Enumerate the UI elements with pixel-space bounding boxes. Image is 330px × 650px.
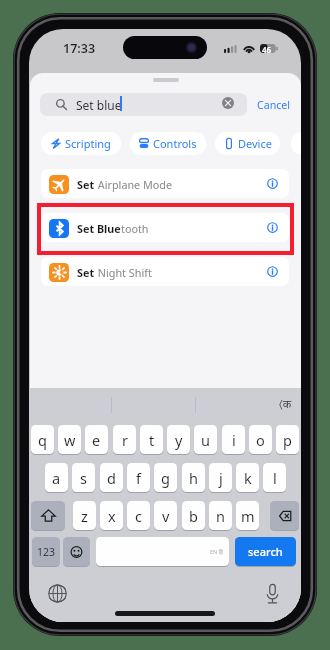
button[interactable]: search — [235, 537, 296, 566]
button[interactable]: e — [85, 425, 108, 454]
staticText: s — [80, 468, 87, 488]
button[interactable]: Cancel — [251, 93, 296, 116]
staticText: Set — [77, 265, 95, 280]
button[interactable]: Clear text — [222, 97, 234, 109]
button[interactable]: Dictate — [261, 582, 284, 605]
button[interactable]: c — [127, 501, 150, 530]
staticText: Set Blue — [77, 221, 121, 236]
staticText: k — [244, 468, 252, 488]
button[interactable]: h — [182, 463, 205, 492]
button[interactable]: f — [127, 463, 150, 492]
button[interactable] — [40, 93, 247, 116]
staticText: search — [248, 544, 283, 559]
button[interactable]: y — [167, 425, 190, 454]
staticText: EN हि — [210, 548, 224, 555]
staticText: m — [241, 506, 255, 526]
button[interactable]: n — [209, 501, 232, 530]
button[interactable]: b — [182, 501, 205, 530]
button[interactable]: r — [113, 425, 136, 454]
staticText: c — [135, 506, 142, 526]
staticText: x — [108, 506, 116, 526]
button[interactable]: p — [276, 425, 299, 454]
staticText: n — [216, 506, 225, 526]
staticText: Scripting — [65, 136, 111, 151]
button[interactable]: l — [263, 463, 286, 492]
button[interactable]: Shift — [31, 501, 65, 530]
button[interactable]: w — [58, 425, 81, 454]
staticText: 17:33 — [63, 40, 96, 57]
button[interactable]: Backspace — [270, 501, 299, 530]
staticText: z — [81, 506, 88, 526]
button[interactable]: Info — [267, 222, 278, 233]
button[interactable]: q — [31, 425, 54, 454]
staticText: Night Shift — [95, 265, 152, 280]
button[interactable]: i — [222, 425, 245, 454]
button[interactable]: x — [100, 501, 123, 530]
staticText: u — [201, 430, 210, 450]
staticText: Device — [238, 136, 272, 151]
button[interactable]: t — [140, 425, 163, 454]
staticText: i — [232, 430, 236, 450]
staticText: Airplane Mode — [95, 177, 173, 192]
staticText: tooth — [121, 221, 149, 236]
button[interactable]: Info — [267, 266, 278, 277]
staticText: g — [161, 468, 170, 488]
staticText: w — [64, 430, 76, 450]
button[interactable]: j — [209, 463, 232, 492]
staticText: Cancel — [257, 98, 290, 112]
staticText: h — [189, 468, 198, 488]
staticText: y — [175, 430, 183, 450]
button[interactable]: Switch keyboard language — [46, 582, 69, 605]
button[interactable]: v — [154, 501, 177, 530]
button[interactable] — [41, 169, 289, 198]
staticText: Set — [77, 177, 95, 192]
button[interactable] — [41, 213, 289, 242]
staticText: Controls — [153, 136, 197, 151]
button[interactable]: Share — [291, 132, 301, 155]
button[interactable]: Device — [215, 132, 280, 155]
staticText: o — [256, 430, 265, 450]
button[interactable]: EN हि — [96, 537, 229, 566]
button[interactable]: Controls — [130, 132, 206, 155]
staticText: Set blue — [76, 97, 122, 113]
staticText: e — [92, 430, 101, 450]
button[interactable]: a — [45, 463, 68, 492]
staticText: p — [283, 430, 292, 450]
staticText: j — [219, 468, 223, 488]
button[interactable]: g — [154, 463, 177, 492]
button[interactable]: k — [236, 463, 259, 492]
staticText: v — [162, 506, 170, 526]
staticText: t — [149, 430, 155, 450]
staticText: 〈क — [279, 396, 292, 411]
staticText: 123 — [37, 545, 56, 559]
staticText: b — [189, 506, 198, 526]
button[interactable]: Emoji keyboard — [63, 537, 90, 566]
staticText: q — [38, 430, 47, 450]
button[interactable]: d — [100, 463, 123, 492]
button[interactable]: s — [72, 463, 95, 492]
staticText: r — [122, 430, 128, 450]
staticText: 46 — [262, 44, 272, 55]
staticText: a — [52, 468, 61, 488]
button[interactable] — [41, 257, 289, 286]
button[interactable]: m — [236, 501, 259, 530]
button[interactable]: o — [249, 425, 272, 454]
button[interactable]: u — [194, 425, 217, 454]
staticText: f — [136, 468, 141, 488]
button[interactable]: Scripting — [41, 132, 121, 155]
button[interactable]: Info — [267, 178, 278, 189]
button[interactable]: 123 — [32, 537, 60, 566]
staticText: l — [273, 468, 277, 488]
staticText: d — [107, 468, 116, 488]
button[interactable]: z — [73, 501, 96, 530]
